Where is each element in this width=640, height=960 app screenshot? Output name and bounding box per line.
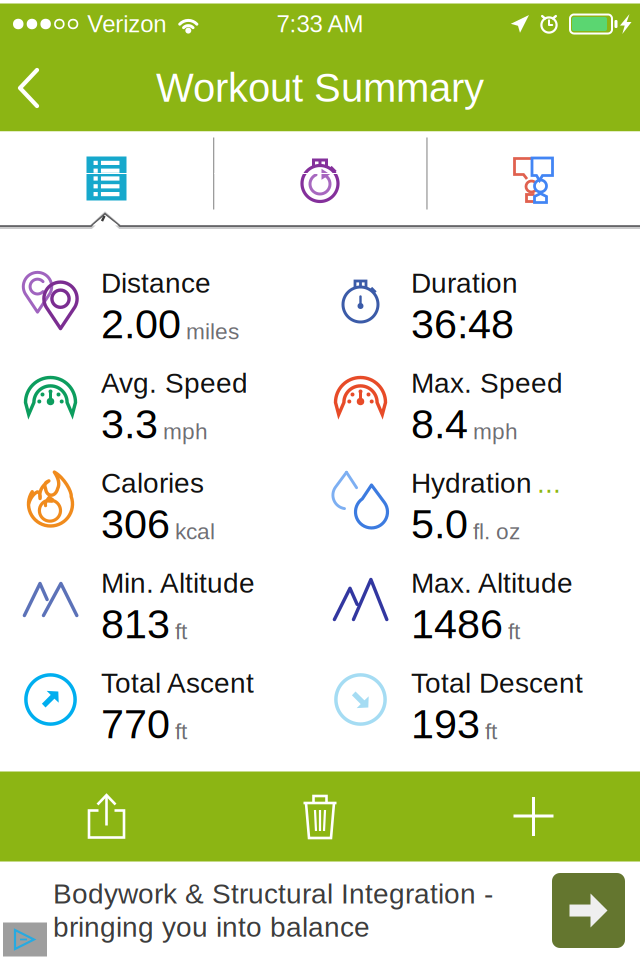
staticText: 7:33 AM [276,11,363,37]
button[interactable]: Share [427,131,640,229]
staticText: 813 [101,601,170,647]
button[interactable]: Splits [213,131,427,229]
staticText: Max. Altitude [411,567,573,599]
staticText: mph [163,419,208,444]
staticText: ft [485,719,497,744]
button[interactable]: Add [427,771,640,861]
staticText: ft [508,619,520,644]
staticText: Min. Altitude [101,567,255,599]
staticText: Max. Speed [411,367,563,399]
button[interactable]: Share [0,771,213,861]
staticText: 306 [101,501,170,547]
staticText: 770 [101,701,170,747]
button[interactable]: Bodywork & Structural Integration - [0,861,640,956]
staticText: Avg. Speed [101,367,248,399]
staticText: Total Ascent [101,667,254,699]
staticText: 3.3 [101,401,158,447]
staticText: Distance [101,267,211,299]
staticText: Verizon [87,11,166,37]
staticText: 1486 [411,601,503,647]
button[interactable]: Back [0,56,65,120]
staticText: 2.00 [101,301,181,347]
staticText: miles [186,319,239,344]
staticText: Total Descent [411,667,583,699]
staticText: kcal [175,519,215,544]
staticText: bringing you into balance [53,911,370,943]
staticText: Bodywork & Structural Integration - [53,878,493,909]
staticText: fl. oz [473,519,520,544]
staticText: Duration [411,267,518,299]
staticText: Calories [101,467,204,499]
button[interactable]: Delete [213,771,427,861]
staticText: 5.0 [411,501,468,547]
staticText: Hydration [411,467,532,499]
staticText: ft [175,619,187,644]
staticText: Workout Summary [156,66,484,110]
button[interactable]: Summary [0,131,213,229]
staticText: ft [175,719,187,744]
staticText: 193 [411,701,480,747]
staticText: mph [473,419,518,444]
staticText: 8.4 [411,401,468,447]
staticText: 36:48 [411,301,514,347]
staticText: ... [537,467,561,499]
